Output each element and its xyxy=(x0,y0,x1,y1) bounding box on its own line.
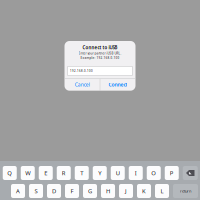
staticText: E xyxy=(44,169,47,177)
staticText: K xyxy=(142,187,146,195)
staticText: I xyxy=(135,169,137,177)
button[interactable]: return xyxy=(173,184,198,198)
button[interactable]: O xyxy=(147,166,161,180)
staticText: G xyxy=(88,187,92,195)
button[interactable]: T xyxy=(75,166,89,180)
staticText: Y xyxy=(98,169,101,177)
staticText: Cancel xyxy=(75,81,90,88)
staticText: 192.168.0.100 xyxy=(70,69,93,73)
staticText: O xyxy=(151,169,156,177)
staticText: U xyxy=(116,169,120,177)
button[interactable]: J xyxy=(119,184,133,198)
staticText: H xyxy=(106,187,110,195)
button[interactable]: E xyxy=(39,166,53,180)
staticText: Q xyxy=(7,169,12,177)
staticText: Connect to iUSB xyxy=(82,44,117,50)
staticText: P xyxy=(170,169,174,177)
button[interactable]: I xyxy=(129,166,143,180)
staticText: J xyxy=(125,187,127,195)
staticText: Connect xyxy=(108,81,127,88)
button[interactable]: U xyxy=(111,166,125,180)
button[interactable]: A xyxy=(11,184,25,198)
staticText: Enter your partner iUSB URL. xyxy=(78,51,121,55)
button[interactable]: G xyxy=(83,184,97,198)
button[interactable]: W xyxy=(21,166,35,180)
staticText: A xyxy=(16,187,20,195)
staticText: S xyxy=(34,187,37,195)
button[interactable]: L xyxy=(155,184,169,198)
button[interactable]: P xyxy=(165,166,179,180)
staticText: L xyxy=(160,187,163,195)
staticText: W xyxy=(25,169,30,177)
staticText: D xyxy=(52,187,56,195)
button[interactable]: H xyxy=(101,184,115,198)
staticText: return xyxy=(180,188,191,194)
button[interactable]: D xyxy=(47,184,61,198)
button[interactable]: Cancel xyxy=(64,79,100,91)
button[interactable]: Y xyxy=(93,166,107,180)
button[interactable]: R xyxy=(57,166,71,180)
button[interactable]: Q xyxy=(3,166,17,180)
button[interactable]: K xyxy=(137,184,151,198)
staticText: F xyxy=(70,187,73,195)
button[interactable]: Delete xyxy=(183,166,198,180)
button[interactable]: F xyxy=(65,184,79,198)
staticText: R xyxy=(62,169,66,177)
button[interactable]: Connect xyxy=(100,79,135,91)
button[interactable]: S xyxy=(29,184,43,198)
staticText: T xyxy=(80,169,83,177)
staticText: Example: 192.168.0.100 xyxy=(80,56,119,60)
